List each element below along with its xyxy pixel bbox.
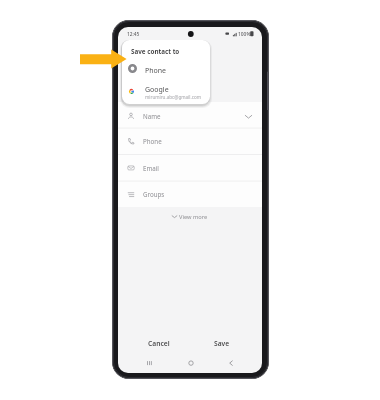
staticText: 12:45	[127, 31, 140, 38]
staticText: Google	[145, 85, 169, 95]
button[interactable]: Google	[122, 82, 210, 104]
button[interactable]: Groups	[118, 181, 262, 207]
button[interactable]: Home	[186, 358, 196, 368]
button[interactable]: Save	[201, 334, 242, 353]
staticText: Save	[214, 339, 230, 348]
staticText: View more	[179, 213, 208, 221]
staticText: Cancel	[148, 339, 170, 348]
button[interactable]: Email	[118, 155, 262, 181]
staticText: Phone	[145, 66, 167, 76]
button[interactable]: Name	[118, 103, 262, 129]
button[interactable]: View more	[171, 209, 211, 224]
button[interactable]: Phone	[118, 128, 262, 154]
staticText: 100%	[238, 31, 251, 38]
staticText: mirumiru.abc@gmail.com	[145, 94, 201, 100]
button[interactable]: Phone	[122, 60, 210, 79]
staticText: Name	[143, 112, 161, 120]
staticText: Groups	[143, 190, 165, 198]
staticText: Phone	[143, 137, 162, 145]
button[interactable]: Cancel	[138, 334, 179, 353]
staticText: Email	[143, 164, 159, 172]
button[interactable]: Back	[226, 358, 236, 368]
staticText: Save contact to	[131, 47, 180, 56]
button[interactable]: Recent apps	[144, 358, 154, 368]
